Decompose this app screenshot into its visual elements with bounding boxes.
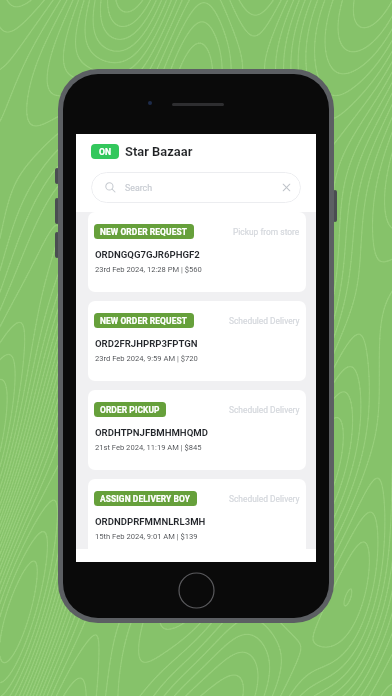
staticText: ASSIGN DELIVERY BOY bbox=[100, 494, 191, 504]
button[interactable]: Clear search bbox=[281, 182, 292, 193]
staticText: ON bbox=[99, 147, 112, 157]
staticText: ORDER PICKUP bbox=[100, 405, 160, 415]
staticText: NEW ORDER REQUEST bbox=[100, 227, 188, 237]
button[interactable]: Search bbox=[91, 172, 301, 203]
staticText: 23rd Feb 2024, 9:59 AM | $720 bbox=[95, 354, 198, 363]
button[interactable]: ORDER PICKUP bbox=[88, 390, 306, 470]
button[interactable]: NEW ORDER REQUEST bbox=[88, 301, 306, 381]
staticText: 21st Feb 2024, 11:19 AM | $845 bbox=[95, 443, 202, 452]
staticText: ORDHTPNJFBMHMHQMD bbox=[95, 427, 208, 438]
staticText: Search bbox=[125, 183, 153, 193]
staticText: 23rd Feb 2024, 12:28 PM | $560 bbox=[95, 265, 202, 274]
staticText: Scheduled Delivery bbox=[229, 494, 300, 504]
staticText: ORDNDPRFMMNLRL3MH bbox=[95, 516, 206, 527]
staticText: Star Bazaar bbox=[125, 144, 193, 159]
button[interactable]: ON bbox=[91, 144, 119, 159]
staticText: Scheduled Delivery bbox=[229, 316, 300, 326]
staticText: NEW ORDER REQUEST bbox=[100, 316, 188, 326]
staticText: Pickup from store bbox=[233, 227, 300, 237]
button[interactable]: NEW ORDER REQUEST bbox=[88, 212, 306, 292]
button[interactable]: ASSIGN DELIVERY BOY bbox=[88, 479, 306, 559]
staticText: ORDNGQG7GJR6PHGF2 bbox=[95, 249, 200, 260]
staticText: Scheduled Delivery bbox=[229, 405, 300, 415]
staticText: ORD2FRJHPRP3FPTGN bbox=[95, 338, 198, 349]
staticText: 15th Feb 2024, 9:01 AM | $139 bbox=[95, 532, 198, 541]
